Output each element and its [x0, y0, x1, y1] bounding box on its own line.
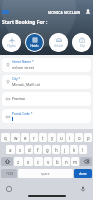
- button[interactable]: Backspace: [80, 157, 92, 166]
- button[interactable]: s: [16, 145, 24, 154]
- staticText: t: [42, 135, 44, 141]
- button[interactable]: y: [48, 133, 56, 142]
- button[interactable]: done: [74, 169, 92, 178]
- staticText: n: [65, 159, 68, 165]
- button[interactable]: w: [11, 133, 20, 142]
- staticText: h: [55, 147, 58, 153]
- button[interactable]: Province: [2, 92, 91, 106]
- staticText: e: [24, 135, 27, 141]
- staticText: l: [82, 147, 84, 153]
- button[interactable]: Logo: [2, 10, 9, 14]
- staticText: nelson street: [12, 65, 35, 70]
- button[interactable]: Hotels: [25, 33, 44, 52]
- button[interactable]: r: [30, 133, 38, 142]
- button[interactable]: ?123: [1, 169, 17, 178]
- button[interactable]: Trip: [72, 33, 91, 52]
- staticText: space: [41, 172, 50, 176]
- button[interactable]: p: [84, 133, 92, 142]
- staticText: a: [9, 147, 12, 153]
- button[interactable]: Shift: [1, 157, 13, 166]
- button[interactable]: t: [39, 133, 47, 142]
- staticText: p: [87, 135, 90, 141]
- staticText: c: [37, 159, 40, 165]
- button[interactable]: Vehicle: [49, 33, 68, 52]
- button[interactable]: Voice input: [80, 186, 86, 192]
- button[interactable]: v: [44, 157, 52, 166]
- staticText: k: [73, 147, 76, 153]
- staticText: done: [79, 172, 87, 176]
- button[interactable]: e: [21, 133, 29, 142]
- staticText: i: [69, 135, 71, 141]
- button[interactable]: a: [6, 145, 15, 154]
- button[interactable]: f: [34, 145, 42, 154]
- staticText: x: [27, 159, 30, 165]
- button[interactable]: x: [24, 157, 33, 166]
- button[interactable]: q: [1, 133, 10, 142]
- button[interactable]: b: [53, 157, 61, 166]
- button[interactable]: Emoji: [6, 186, 12, 192]
- staticText: d: [28, 147, 31, 153]
- staticText: v: [47, 159, 50, 165]
- staticText: ?123: [6, 172, 13, 176]
- button[interactable]: Flights: [2, 33, 21, 52]
- staticText: j: [64, 147, 66, 153]
- button[interactable]: d: [25, 145, 33, 154]
- staticText: u: [60, 135, 63, 141]
- button[interactable]: i: [66, 133, 74, 142]
- button[interactable]: n: [62, 157, 70, 166]
- staticText: Flights: [7, 44, 16, 48]
- button[interactable]: l: [79, 145, 87, 154]
- staticText: r: [33, 135, 35, 141]
- button[interactable]: m: [71, 157, 79, 166]
- staticText: y: [51, 135, 54, 141]
- button[interactable]: g: [43, 145, 51, 154]
- staticText: o: [78, 135, 81, 141]
- button[interactable]: u: [57, 133, 65, 142]
- button[interactable]: c: [34, 157, 43, 166]
- staticText: m: [73, 159, 78, 165]
- staticText: q: [4, 135, 7, 141]
- button[interactable]: space: [18, 169, 73, 178]
- button[interactable]: h: [52, 145, 60, 154]
- staticText: f: [37, 147, 39, 153]
- button[interactable]: Postal Code *: [2, 109, 91, 123]
- staticText: Mimaki_Mall(.ca): [12, 82, 40, 87]
- staticText: Hotels: [30, 44, 39, 48]
- staticText: w: [14, 135, 18, 141]
- staticText: Province: [12, 97, 26, 101]
- button[interactable]: k: [70, 145, 78, 154]
- staticText: City *: [12, 77, 21, 81]
- staticText: Trip: [80, 44, 85, 48]
- staticText: z: [17, 159, 20, 165]
- button[interactable]: City *: [2, 75, 91, 89]
- staticText: Street Name *: [12, 60, 34, 64]
- staticText: Vehicle: [54, 44, 63, 48]
- button[interactable]: Profile: [85, 9, 91, 15]
- button[interactable]: o: [75, 133, 83, 142]
- staticText: Start Booking For :: [2, 19, 48, 26]
- staticText: MONICA MCCLAIN: [48, 10, 81, 14]
- staticText: Postal Code *: [12, 112, 33, 116]
- button[interactable]: j: [61, 145, 69, 154]
- staticText: g: [46, 147, 49, 153]
- staticText: s: [19, 147, 22, 153]
- button[interactable]: Street Name *: [2, 58, 91, 72]
- button[interactable]: z: [14, 157, 23, 166]
- staticText: b: [56, 159, 59, 165]
